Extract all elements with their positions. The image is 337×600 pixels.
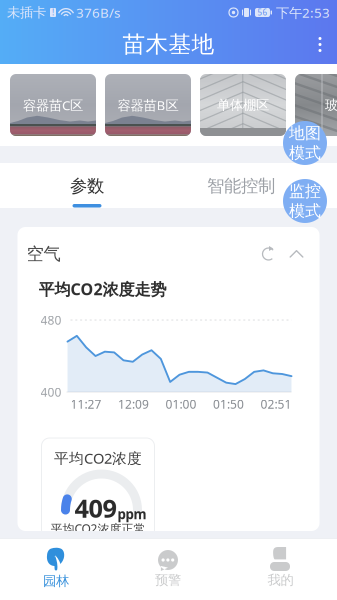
staticText: 玻璃 <box>325 97 337 113</box>
staticText: 园林 <box>43 573 69 589</box>
staticText: 平均CO2浓度 <box>54 448 142 468</box>
button[interactable]: Refresh <box>254 239 282 269</box>
staticText: 苗木基地 <box>122 31 214 58</box>
staticText: 我的 <box>267 572 293 588</box>
button[interactable]: 监控 <box>283 179 327 223</box>
staticText: ! <box>52 7 54 18</box>
button[interactable]: 参数 <box>10 163 164 208</box>
staticText: 容器苗C区 <box>23 96 83 114</box>
staticText: 智能控制 <box>207 175 275 197</box>
button[interactable]: 智能控制 <box>164 163 318 208</box>
staticText: 模式 <box>289 143 321 163</box>
staticText: 地图 <box>289 123 321 143</box>
staticText: 480 <box>40 312 61 328</box>
button[interactable]: 地图 <box>283 121 327 165</box>
staticText: 容器苗B区 <box>117 96 178 114</box>
staticText: ppm <box>117 505 146 523</box>
button[interactable]: 容器苗B区 <box>105 74 191 136</box>
staticText: 未插卡 <box>7 4 46 21</box>
button[interactable]: 我的 <box>224 539 337 600</box>
staticText: 单体棚区 <box>217 97 269 113</box>
button[interactable]: More options <box>303 25 337 64</box>
staticText: 监控 <box>289 181 321 201</box>
button[interactable]: 预警 <box>112 539 224 600</box>
staticText: 01:50 <box>213 396 244 412</box>
staticText: 12:09 <box>118 396 149 412</box>
staticText: 02:51 <box>260 396 291 412</box>
staticText: 参数 <box>70 175 104 197</box>
button[interactable]: 单体棚区 <box>200 74 286 136</box>
staticText: 01:00 <box>165 396 196 412</box>
button[interactable]: Collapse <box>282 239 310 269</box>
staticText: 平均CO2浓度正常 <box>50 520 145 536</box>
staticText: 模式 <box>289 201 321 221</box>
staticText: 11:27 <box>70 396 101 412</box>
button[interactable]: 园林 <box>0 539 112 600</box>
staticText: 预警 <box>155 572 181 588</box>
staticText: 平均CO2浓度走势 <box>38 278 166 300</box>
button[interactable]: 容器苗C区 <box>10 74 96 136</box>
staticText: 空气 <box>26 243 60 265</box>
staticText: 56 <box>257 7 267 18</box>
staticText: 400 <box>40 384 61 400</box>
staticText: 409 <box>74 491 116 525</box>
staticText: 下午2:53 <box>276 4 330 21</box>
button[interactable]: 玻璃 <box>295 74 337 136</box>
staticText: 376B/s <box>76 4 120 21</box>
